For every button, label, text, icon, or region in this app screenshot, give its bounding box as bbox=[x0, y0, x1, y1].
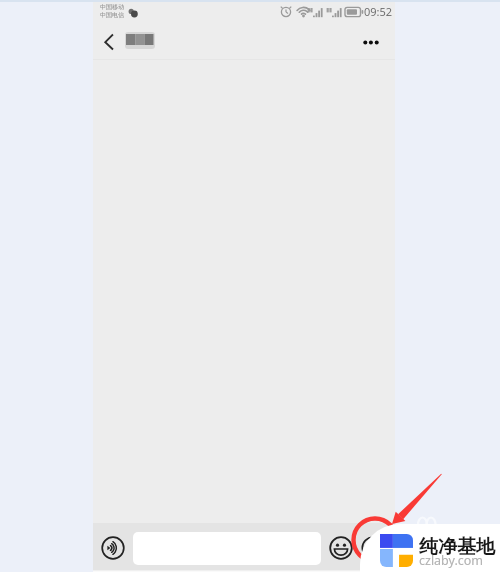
staticText: 09:52 bbox=[364, 4, 393, 19]
button[interactable]: More functions bbox=[361, 536, 385, 560]
staticText: 纯净基地 bbox=[419, 535, 495, 559]
button[interactable]: Emoji bbox=[329, 536, 353, 560]
staticText: czlaby.com bbox=[419, 552, 484, 569]
staticText: 中国移动 bbox=[100, 3, 124, 11]
staticText: 中国电信 bbox=[100, 11, 124, 19]
button[interactable]: Voice input bbox=[101, 536, 125, 560]
button[interactable]: More options bbox=[357, 24, 389, 56]
button[interactable]: Back bbox=[97, 24, 129, 56]
